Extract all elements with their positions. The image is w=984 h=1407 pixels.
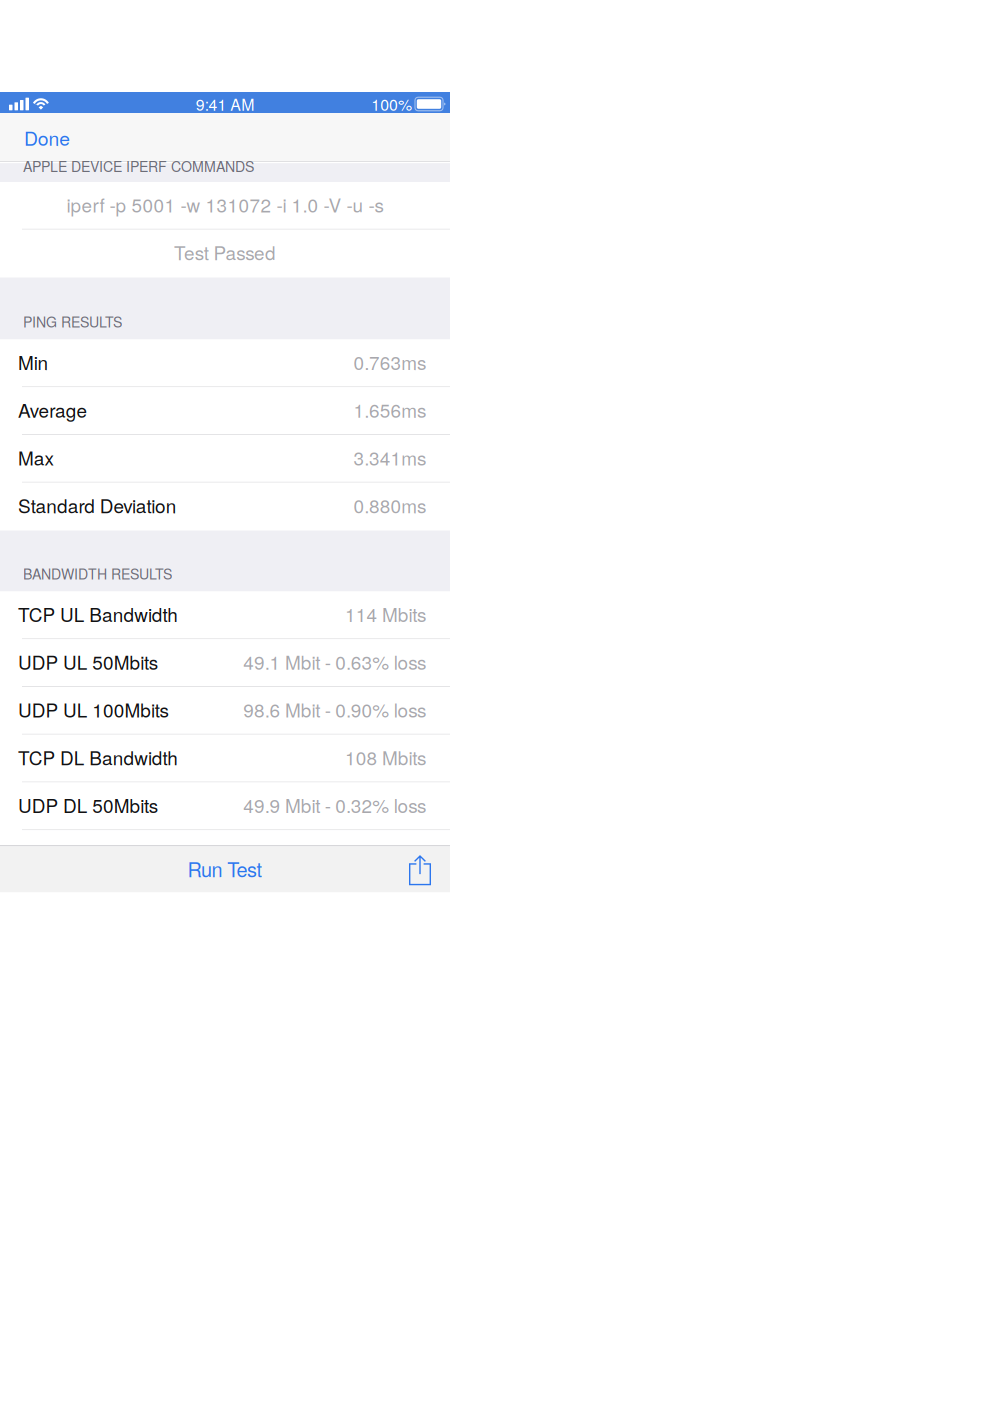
button[interactable]: Max — [0, 435, 450, 483]
staticText: APPLE DEVICE IPERF COMMANDS — [23, 156, 254, 176]
staticText: 9:41 AM — [196, 93, 254, 115]
staticText: Average — [18, 396, 87, 423]
staticText: UDP DL 50Mbits — [18, 791, 158, 818]
button[interactable]: Done — [0, 113, 104, 162]
button[interactable]: Run Test — [145, 845, 305, 892]
staticText: Max — [18, 444, 53, 471]
staticText: 49.1 Mbit - 0.63% loss — [243, 648, 426, 675]
staticText: 49.9 Mbit - 0.32% loss — [243, 791, 426, 818]
button[interactable]: Average — [0, 387, 450, 435]
button[interactable]: UDP UL 100Mbits — [0, 687, 450, 735]
staticText: Done — [24, 124, 70, 151]
button[interactable]: TCP DL Bandwidth — [0, 735, 450, 783]
staticText: UDP UL 100Mbits — [18, 696, 168, 723]
staticText: 0.880ms — [353, 492, 426, 519]
staticText: 108 Mbits — [345, 744, 426, 771]
button[interactable]: Standard Deviation — [0, 483, 450, 531]
button[interactable]: UDP DL 50Mbits — [0, 782, 450, 830]
staticText: 114 Mbits — [345, 600, 426, 627]
button[interactable]: Share — [398, 845, 442, 892]
staticText: TCP DL Bandwidth — [18, 744, 178, 771]
staticText: BANDWIDTH RESULTS — [23, 563, 172, 583]
button[interactable]: UDP UL 50Mbits — [0, 639, 450, 687]
staticText: 0.763ms — [353, 348, 426, 375]
staticText: UDP UL 50Mbits — [18, 648, 158, 675]
staticText: Min — [18, 348, 48, 375]
staticText: Test Passed — [174, 239, 276, 266]
button[interactable]: TCP UL Bandwidth — [0, 591, 450, 639]
staticText: TCP UL Bandwidth — [18, 600, 178, 627]
staticText: 3.341ms — [353, 444, 426, 471]
staticText: 100% — [371, 93, 412, 115]
button[interactable]: Min — [0, 339, 450, 387]
staticText: Standard Deviation — [18, 492, 177, 519]
staticText: PING RESULTS — [23, 311, 122, 331]
staticText: Run Test — [188, 854, 262, 883]
staticText: iperf -p 5001 -w 131072 -i 1.0 -V -u -s — [66, 191, 383, 218]
staticText: 98.6 Mbit - 0.90% loss — [243, 696, 426, 723]
staticText: 1.656ms — [353, 396, 426, 423]
